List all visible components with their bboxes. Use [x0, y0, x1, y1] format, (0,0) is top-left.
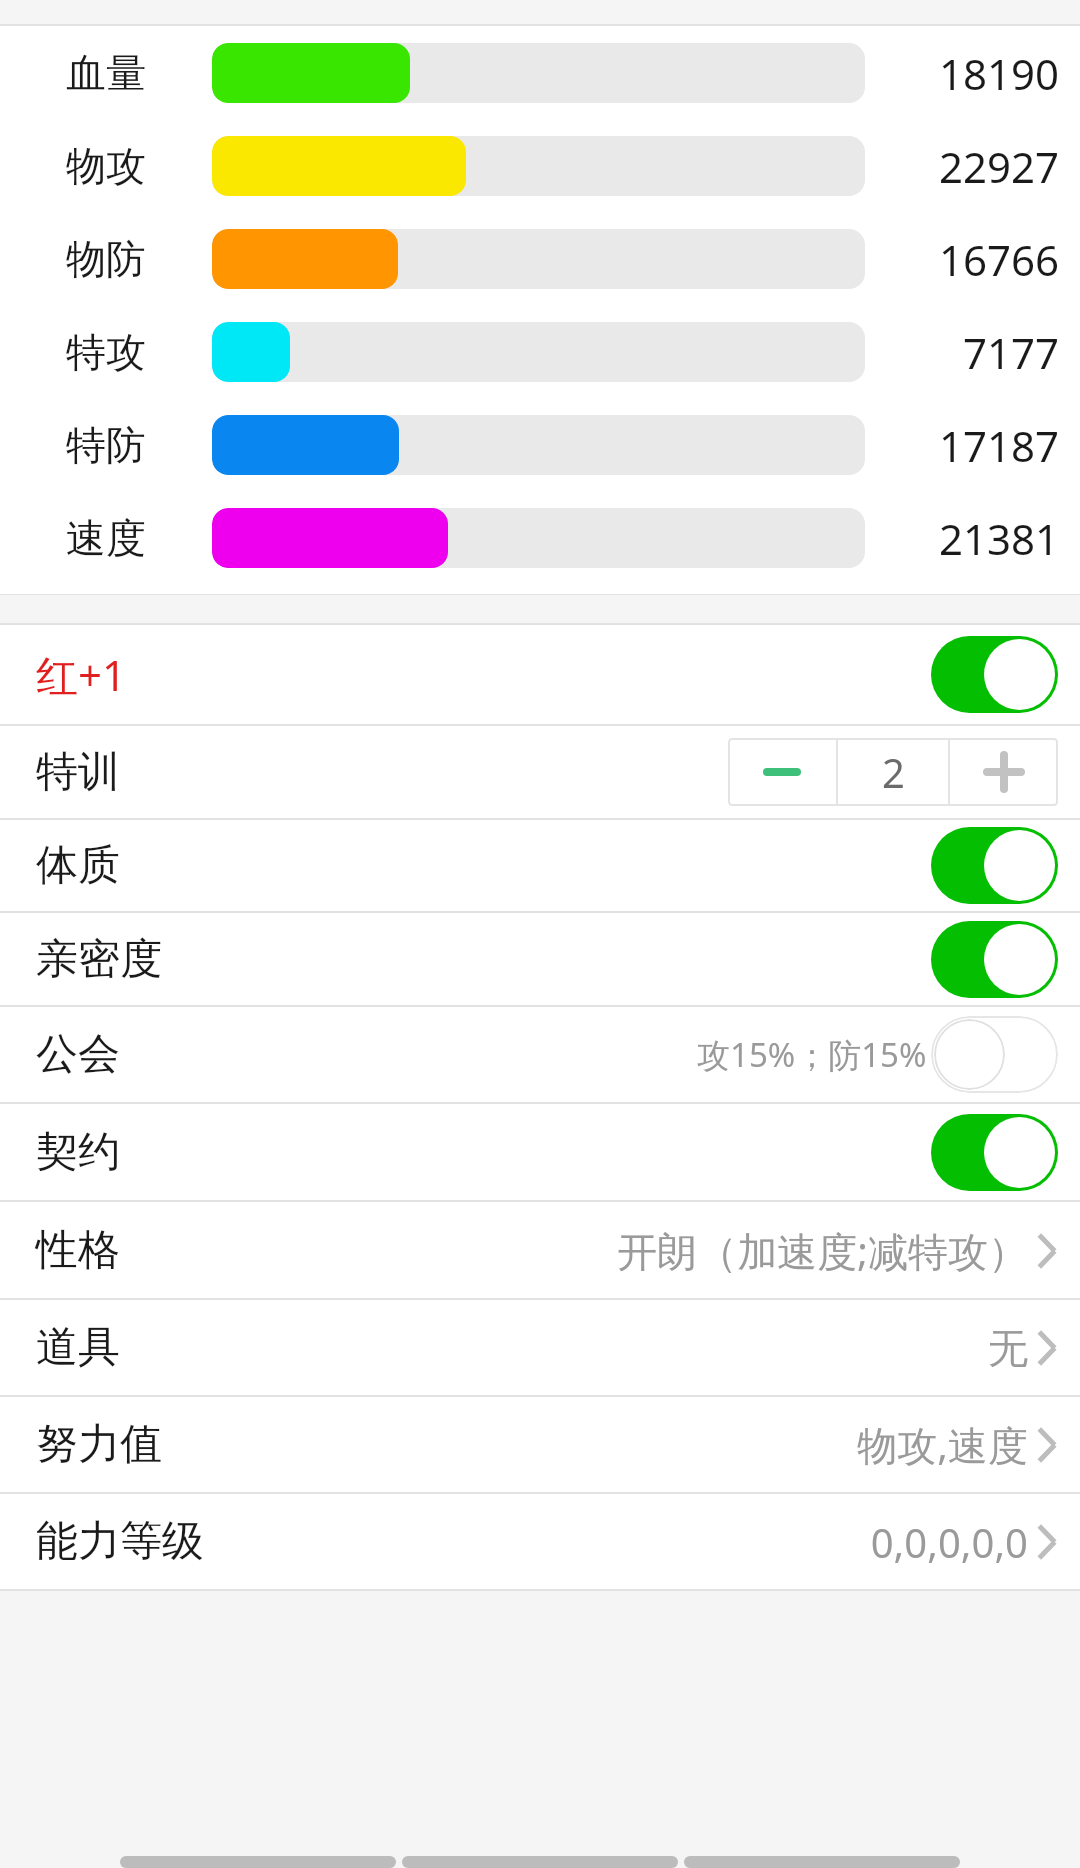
staticText: 无	[988, 1323, 1028, 1373]
staticText: 道具	[36, 1321, 120, 1374]
staticText: 16766	[939, 231, 1060, 288]
staticText: 特防	[66, 420, 146, 470]
button[interactable]: 特攻	[0, 305, 1080, 398]
staticText: 特攻	[66, 327, 146, 377]
button[interactable]: 物防	[0, 212, 1080, 305]
button[interactable]: 减少	[728, 738, 836, 806]
staticText: 18190	[939, 45, 1060, 102]
staticText: 性格	[36, 1224, 120, 1277]
button[interactable]: 特防	[0, 398, 1080, 491]
staticText: 开朗（加速度;减特攻）	[617, 1223, 1028, 1278]
button[interactable]: 性格	[0, 1202, 1080, 1298]
button[interactable]: 开关 已开启	[931, 921, 1058, 998]
staticText: 特训	[36, 746, 120, 799]
staticText: 0,0,0,0,0	[870, 1515, 1028, 1569]
staticText: 2	[882, 745, 905, 799]
button[interactable]	[402, 1856, 678, 1868]
button[interactable]: 开关 已关闭	[931, 1016, 1058, 1093]
staticText: 体质	[36, 839, 120, 892]
staticText: 物攻	[66, 141, 146, 191]
staticText: 契约	[36, 1126, 120, 1179]
staticText: 7177	[963, 324, 1060, 381]
button[interactable]: 速度	[0, 491, 1080, 584]
staticText: 17187	[939, 417, 1060, 474]
button[interactable]: 道具	[0, 1300, 1080, 1395]
button[interactable]	[684, 1856, 960, 1868]
staticText: 21381	[939, 510, 1060, 567]
button[interactable]: 能力等级	[0, 1494, 1080, 1589]
button[interactable]	[120, 1856, 396, 1868]
staticText: 速度	[66, 513, 146, 563]
staticText: 物防	[66, 234, 146, 284]
staticText: 物攻,速度	[857, 1417, 1028, 1472]
staticText: 亲密度	[36, 933, 162, 986]
staticText: 22927	[939, 138, 1060, 195]
button[interactable]: 增加	[950, 738, 1058, 806]
button[interactable]: 开关 已开启	[931, 636, 1058, 713]
staticText: 攻15%；防15%	[697, 1032, 927, 1077]
button[interactable]: 努力值	[0, 1397, 1080, 1492]
button[interactable]: 血量	[0, 26, 1080, 119]
staticText: 公会	[36, 1028, 120, 1081]
button[interactable]: 开关 已开启	[931, 827, 1058, 904]
button[interactable]: 2	[838, 738, 948, 806]
staticText: 努力值	[36, 1418, 162, 1471]
button[interactable]: 体质	[0, 820, 1080, 911]
staticText: 红+1	[36, 646, 127, 703]
button[interactable]: 亲密度	[0, 913, 1080, 1005]
button[interactable]: 红+1	[0, 625, 1080, 724]
staticText: 血量	[66, 48, 146, 98]
button[interactable]: 契约	[0, 1104, 1080, 1200]
button[interactable]: 特训	[0, 726, 1080, 818]
button[interactable]: 物攻	[0, 119, 1080, 212]
button[interactable]: 公会	[0, 1007, 1080, 1102]
button[interactable]: 开关 已开启	[931, 1114, 1058, 1191]
staticText: 能力等级	[36, 1515, 204, 1568]
